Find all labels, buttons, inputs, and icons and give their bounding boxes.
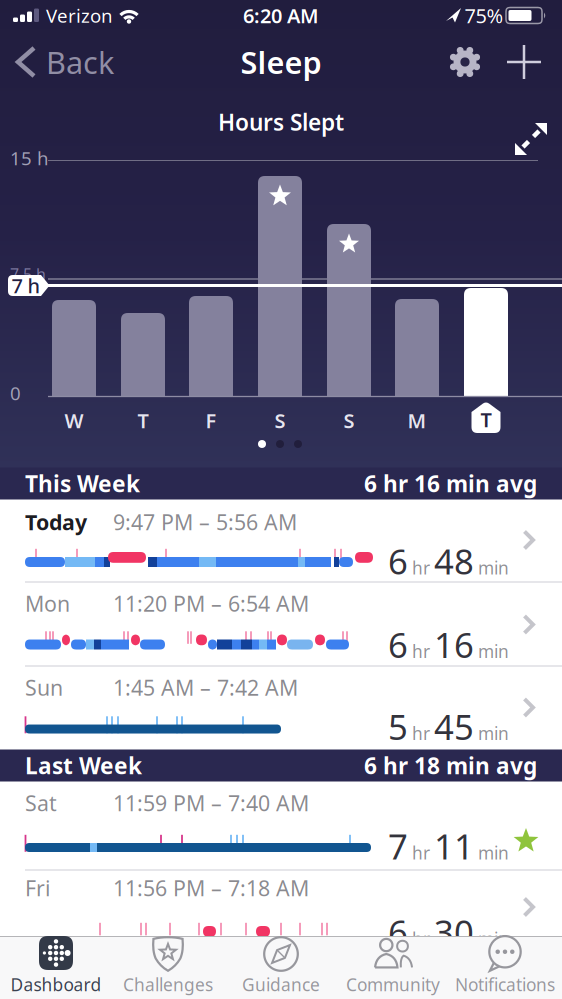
button[interactable]: Fri xyxy=(0,870,562,954)
staticText: 9:47 PM – 5:56 AM xyxy=(113,508,297,536)
staticText: hr xyxy=(412,927,430,950)
staticText: 16 xyxy=(434,621,474,667)
staticText: hr xyxy=(412,722,430,745)
staticText: Back xyxy=(46,42,114,82)
staticText: F xyxy=(205,407,216,434)
button[interactable]: Settings xyxy=(443,40,487,84)
staticText: T xyxy=(480,406,491,433)
button[interactable]: Dashboard xyxy=(1,936,111,996)
button[interactable]: Community xyxy=(338,936,448,996)
staticText: Challenges xyxy=(123,973,213,996)
staticText: 6 xyxy=(388,909,408,955)
staticText: 11:56 PM – 7:18 AM xyxy=(113,874,309,902)
staticText: M xyxy=(407,407,426,434)
staticText: 0 xyxy=(10,381,21,405)
staticText: 15 h xyxy=(10,146,49,170)
staticText: Fri xyxy=(25,874,51,902)
staticText: min xyxy=(478,556,509,579)
staticText: Sleep xyxy=(240,42,321,82)
staticText: 5 xyxy=(388,703,408,749)
button[interactable]: Sat xyxy=(0,782,562,870)
staticText: 7 h xyxy=(11,272,40,299)
staticText: 75% xyxy=(464,2,503,29)
staticText: 6 hr 16 min avg xyxy=(364,468,537,498)
staticText: This Week xyxy=(25,468,140,498)
staticText: 48 xyxy=(434,538,474,584)
staticText: 1:45 AM – 7:42 AM xyxy=(113,673,298,702)
staticText: Guidance xyxy=(242,973,320,996)
staticText: min xyxy=(478,722,509,745)
button[interactable]: Mon xyxy=(0,582,562,666)
button[interactable]: Back xyxy=(10,40,160,84)
button[interactable]: Sun xyxy=(0,666,562,749)
staticText: 45 xyxy=(434,703,474,749)
button[interactable]: Expand chart xyxy=(514,122,548,156)
staticText: 7.5 h xyxy=(10,263,46,285)
staticText: T xyxy=(137,407,148,434)
staticText: hr xyxy=(412,556,430,579)
staticText: Mon xyxy=(25,589,70,618)
staticText: hr xyxy=(412,841,430,864)
staticText: 11 xyxy=(434,823,474,869)
staticText: 6 hr 18 min avg xyxy=(364,750,537,780)
staticText: Sat xyxy=(25,789,57,817)
staticText: Notifications xyxy=(455,973,555,996)
staticText: min xyxy=(478,640,509,663)
button[interactable]: Challenges xyxy=(113,936,223,996)
staticText: W xyxy=(64,407,83,434)
button[interactable]: Notifications xyxy=(450,936,560,996)
staticText: S xyxy=(274,407,285,434)
staticText: 6 xyxy=(388,538,408,584)
button[interactable]: Add xyxy=(502,40,546,84)
staticText: 11:59 PM – 7:40 AM xyxy=(113,789,309,817)
staticText: 7 xyxy=(388,823,408,869)
staticText: Today xyxy=(25,508,87,536)
staticText: 6 xyxy=(388,621,408,667)
button[interactable]: Today xyxy=(0,500,562,582)
staticText: min xyxy=(478,927,509,950)
staticText: Last Week xyxy=(25,750,142,780)
staticText: Verizon xyxy=(46,3,113,28)
staticText: 11:20 PM – 6:54 AM xyxy=(113,589,309,618)
staticText: Sun xyxy=(25,673,63,702)
staticText: Dashboard xyxy=(10,973,101,996)
button[interactable]: Guidance xyxy=(226,936,336,996)
staticText: Hours Slept xyxy=(218,107,344,137)
staticText: S xyxy=(343,407,354,434)
staticText: 30 xyxy=(434,909,474,955)
staticText: hr xyxy=(412,640,430,663)
staticText: Community xyxy=(346,973,440,996)
staticText: 6:20 AM xyxy=(243,2,319,29)
staticText: min xyxy=(478,841,509,864)
